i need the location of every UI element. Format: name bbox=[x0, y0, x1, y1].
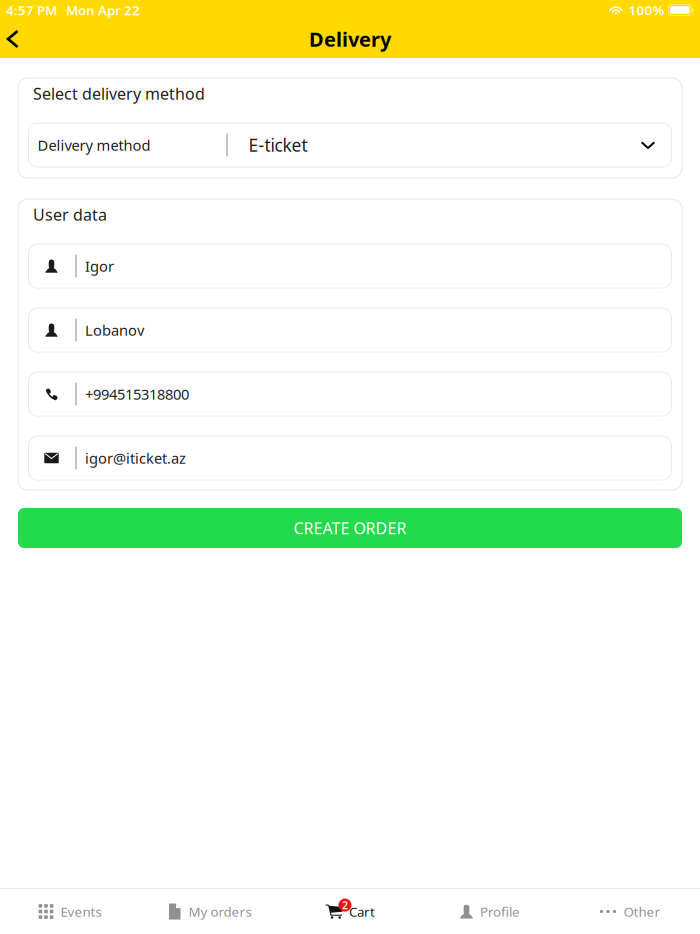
staticText: Lobanov bbox=[85, 320, 144, 340]
button[interactable]: CREATE ORDER bbox=[18, 508, 682, 548]
staticText: +994515318800 bbox=[85, 384, 189, 404]
staticText: E-ticket bbox=[248, 133, 307, 156]
staticText: 100% bbox=[628, 1, 664, 19]
staticText: Igor bbox=[85, 256, 114, 276]
staticText: Mon Apr 22 bbox=[66, 1, 140, 19]
staticText: Delivery bbox=[309, 26, 391, 52]
button[interactable]: Igor bbox=[28, 244, 671, 288]
staticText: igor@iticket.az bbox=[85, 448, 186, 468]
staticText: 4:57 PM bbox=[6, 1, 57, 19]
button[interactable]: My orders bbox=[140, 889, 280, 934]
staticText: User data bbox=[33, 204, 107, 225]
staticText: Other bbox=[623, 903, 660, 920]
staticText: 2 bbox=[342, 898, 348, 912]
staticText: My orders bbox=[188, 903, 251, 920]
button[interactable]: Events bbox=[0, 889, 140, 934]
button[interactable]: +994515318800 bbox=[28, 372, 671, 416]
button[interactable]: Profile bbox=[420, 889, 560, 934]
staticText: Cart bbox=[349, 903, 375, 920]
staticText: Profile bbox=[480, 903, 520, 920]
button[interactable]: Other bbox=[560, 889, 700, 934]
button[interactable]: Delivery method bbox=[28, 123, 671, 167]
staticText: CREATE ORDER bbox=[293, 517, 406, 539]
button[interactable]: Back bbox=[0, 20, 36, 58]
button[interactable]: Lobanov bbox=[28, 308, 671, 352]
staticText: Select delivery method bbox=[33, 83, 205, 104]
staticText: Events bbox=[60, 903, 101, 920]
button[interactable]: igor@iticket.az bbox=[28, 436, 671, 480]
button[interactable]: 2 bbox=[280, 889, 420, 934]
staticText: Delivery method bbox=[37, 135, 150, 155]
